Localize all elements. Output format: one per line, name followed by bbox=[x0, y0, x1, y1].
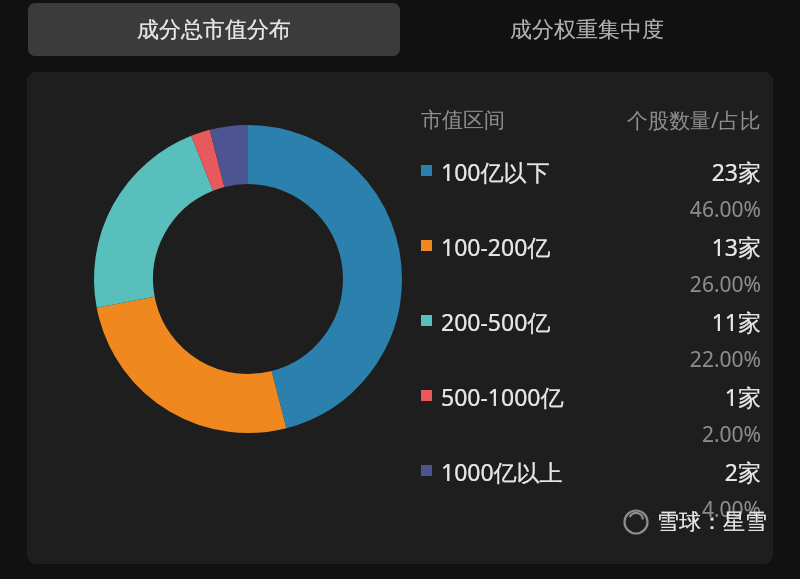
button[interactable]: 200-500亿 bbox=[421, 306, 761, 381]
button[interactable]: 100亿以下 bbox=[421, 156, 761, 231]
button[interactable]: 500-1000亿 bbox=[421, 381, 761, 456]
staticText: 100-200亿 bbox=[441, 231, 551, 262]
staticText: 100亿以下 bbox=[441, 156, 550, 187]
staticText: 成分总市值分布 bbox=[137, 16, 291, 44]
staticText: 2.00% bbox=[701, 420, 761, 449]
staticText: 23家 bbox=[711, 156, 761, 187]
staticText: 500-1000亿 bbox=[441, 381, 564, 412]
staticText: 11家 bbox=[711, 306, 761, 337]
other: Xueqiu logo bbox=[623, 509, 649, 535]
staticText: 市值区间 bbox=[421, 107, 505, 133]
staticText: 22.00% bbox=[689, 345, 761, 374]
staticText: 个股数量/占比 bbox=[627, 106, 761, 135]
staticText: 26.00% bbox=[689, 270, 761, 299]
button[interactable]: 成分总市值分布 bbox=[28, 3, 400, 56]
button[interactable]: 100-200亿 bbox=[421, 231, 761, 306]
staticText: 13家 bbox=[711, 231, 761, 262]
staticText: 4.00% bbox=[701, 495, 761, 524]
staticText: 成分权重集中度 bbox=[510, 16, 664, 44]
staticText: 200-500亿 bbox=[441, 306, 551, 337]
staticText: 1000亿以上 bbox=[441, 456, 563, 487]
staticText: 46.00% bbox=[689, 195, 761, 224]
staticText: 1家 bbox=[724, 381, 761, 412]
staticText: 2家 bbox=[724, 456, 761, 487]
button[interactable]: 1000亿以上 bbox=[421, 456, 761, 531]
staticText: 雪球：星雪 bbox=[657, 508, 767, 536]
button[interactable]: 成分权重集中度 bbox=[400, 3, 774, 56]
